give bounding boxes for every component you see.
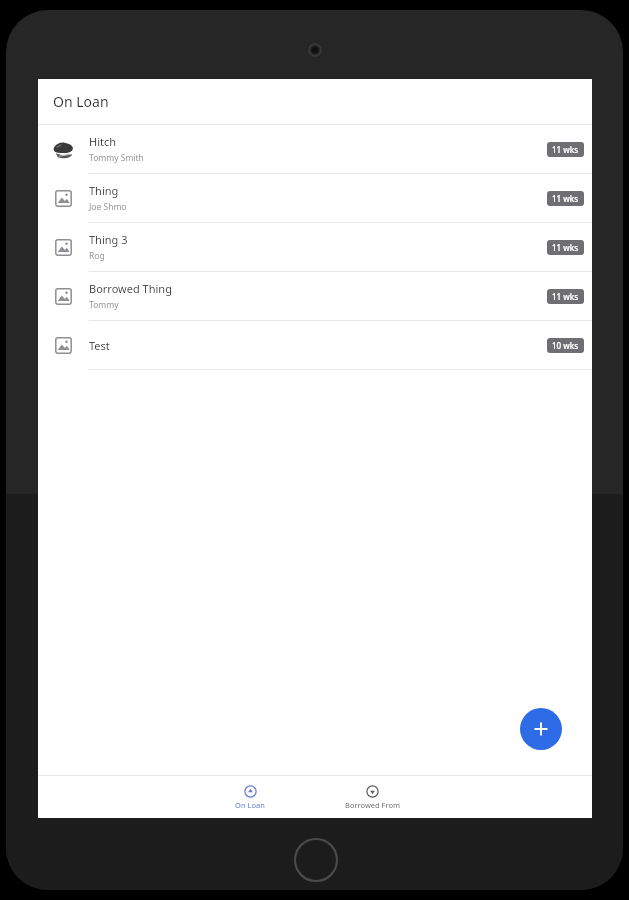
staticText: On Loan: [235, 800, 265, 810]
staticText: Tommy: [89, 299, 119, 311]
staticText: 11 wks: [552, 242, 579, 253]
staticText: Tommy Smith: [89, 152, 144, 164]
button[interactable]: Thing: [38, 174, 592, 222]
staticText: 11 wks: [552, 291, 579, 302]
staticText: Borrowed Thing: [89, 281, 172, 296]
staticText: 11 wks: [552, 144, 579, 155]
staticText: 10 wks: [552, 340, 579, 351]
button[interactable]: Hitch: [38, 125, 592, 173]
staticText: Test: [89, 338, 110, 353]
staticText: Joe Shmo: [89, 201, 127, 213]
staticText: Borrowed From: [345, 800, 400, 810]
staticText: On Loan: [53, 92, 109, 111]
button[interactable]: Borrowed Thing: [38, 272, 592, 320]
staticText: 11 wks: [552, 193, 579, 204]
button[interactable]: Add: [520, 708, 562, 750]
staticText: Rog: [89, 250, 105, 262]
button[interactable]: On Loan: [190, 783, 310, 812]
staticText: Hitch: [89, 134, 117, 149]
staticText: Thing 3: [89, 232, 128, 247]
staticText: Thing: [89, 183, 119, 198]
button[interactable]: Borrowed From: [312, 783, 432, 812]
button[interactable]: Thing 3: [38, 223, 592, 271]
button[interactable]: Test: [38, 321, 592, 369]
